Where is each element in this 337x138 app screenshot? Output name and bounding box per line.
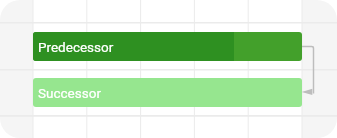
staticText: Successor bbox=[38, 85, 101, 101]
button[interactable]: Predecessor bbox=[33, 32, 302, 61]
other: Task dependency link bbox=[0, 0, 337, 138]
button[interactable]: Successor bbox=[33, 78, 302, 107]
staticText: Predecessor bbox=[38, 39, 114, 55]
